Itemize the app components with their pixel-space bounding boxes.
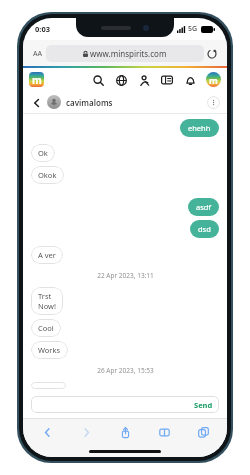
staticText: ehehh (188, 123, 211, 133)
button[interactable]: www.minspirits.com (46, 45, 204, 62)
staticText: 5G (188, 24, 198, 34)
staticText: cavimaloms (66, 97, 113, 108)
button[interactable]: Avatar (47, 95, 61, 109)
staticText: asdf (196, 202, 211, 212)
button[interactable]: Library (160, 73, 174, 87)
staticText: Ok (38, 148, 48, 158)
staticText: m (209, 74, 218, 86)
staticText: AA (33, 49, 43, 59)
staticText: Okok (38, 170, 57, 180)
button[interactable]: Back (37, 422, 57, 442)
button[interactable]: Profile (206, 72, 221, 87)
staticText: Works (38, 345, 61, 355)
button[interactable]: Okok (31, 166, 64, 184)
staticText: www.minspirits.com (90, 48, 167, 59)
staticText: Cool (38, 323, 54, 333)
button[interactable]: Bookmarks (154, 422, 174, 442)
button[interactable]: Notifications (183, 73, 197, 87)
button[interactable]: ehehh (180, 119, 219, 137)
button[interactable]: asdf (188, 198, 219, 216)
staticText: Send (194, 400, 213, 410)
button[interactable]: Reload (204, 46, 220, 62)
button[interactable]: Share (115, 422, 135, 442)
staticText: A ver (38, 250, 56, 260)
button[interactable]: Forward (76, 422, 96, 442)
staticText: Trst (38, 291, 52, 301)
button[interactable]: A ver (31, 246, 63, 264)
button[interactable]: Home (29, 72, 44, 87)
button[interactable]: bsdfg (31, 382, 66, 389)
button[interactable]: Tabs (193, 422, 213, 442)
button[interactable]: Cool (31, 319, 61, 337)
button[interactable]: Back (30, 96, 43, 109)
staticText: 0:03 (35, 24, 50, 34)
staticText: dsd (198, 224, 211, 234)
button[interactable]: Send (31, 396, 219, 413)
button[interactable]: dsd (190, 220, 219, 238)
button[interactable]: Text size (30, 46, 46, 62)
button[interactable]: Trst (31, 287, 63, 315)
staticText: 26 Apr 2023, 15:53 (97, 366, 154, 375)
button[interactable]: More options (207, 96, 220, 109)
staticText: m (32, 73, 42, 87)
staticText: 22 Apr 2023, 13:11 (97, 271, 154, 280)
button[interactable]: Explore (114, 73, 128, 87)
staticText: Now! (38, 301, 56, 311)
button[interactable]: Ok (31, 144, 55, 162)
button[interactable]: People (137, 73, 151, 87)
button[interactable]: Search (91, 73, 105, 87)
button[interactable]: Works (31, 341, 68, 359)
